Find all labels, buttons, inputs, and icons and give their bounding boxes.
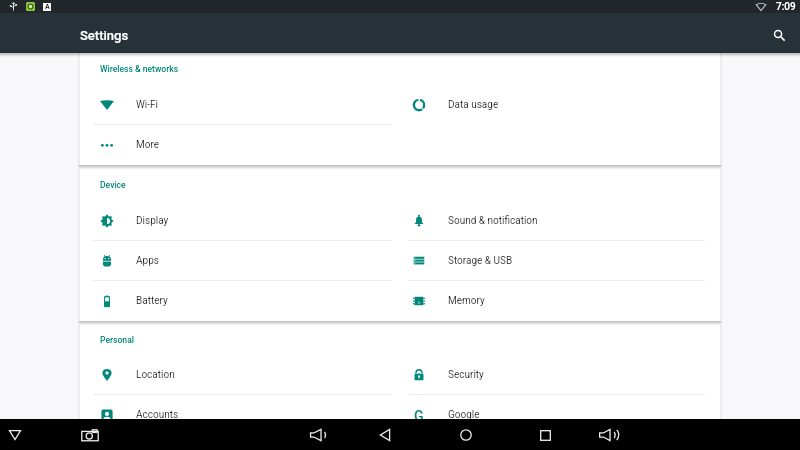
staticText: Data usage xyxy=(448,99,499,111)
staticText: Location xyxy=(136,369,175,381)
button[interactable]: Search xyxy=(764,20,794,50)
button[interactable]: Volume down xyxy=(305,421,333,449)
button[interactable]: Sound & notification xyxy=(400,201,720,241)
button[interactable]: Security xyxy=(400,355,720,395)
button[interactable]: Storage & USB xyxy=(400,241,720,281)
staticText: Storage & USB xyxy=(448,255,513,267)
staticText: Accounts xyxy=(136,409,179,421)
button[interactable]: G xyxy=(400,395,720,435)
button[interactable]: More xyxy=(80,125,400,165)
staticText: Personal xyxy=(100,335,134,345)
button[interactable]: Screenshot xyxy=(76,421,104,449)
button[interactable]: Location xyxy=(80,355,400,395)
staticText: A xyxy=(45,3,50,11)
button[interactable]: Battery xyxy=(80,281,400,321)
button[interactable]: Recents xyxy=(533,423,557,447)
staticText: 7:09 xyxy=(776,1,796,13)
button[interactable]: Accounts xyxy=(80,395,400,435)
button[interactable]: Volume up xyxy=(595,420,625,450)
button[interactable]: Data usage xyxy=(400,85,720,125)
button[interactable]: Memory xyxy=(400,281,720,321)
staticText: Security xyxy=(448,369,484,381)
staticText: More xyxy=(136,139,160,151)
button[interactable]: Apps xyxy=(80,241,400,281)
button[interactable]: Display xyxy=(80,201,400,241)
staticText: Battery xyxy=(136,295,168,307)
staticText: Device xyxy=(100,180,126,190)
staticText: Wireless & networks xyxy=(100,64,179,74)
button[interactable]: Home xyxy=(454,423,478,447)
button[interactable]: Back xyxy=(373,423,397,447)
staticText: Google xyxy=(448,409,480,421)
staticText: G xyxy=(414,408,424,422)
staticText: Settings xyxy=(80,28,129,43)
staticText: Sound & notification xyxy=(448,215,538,227)
button[interactable]: Collapse xyxy=(3,423,27,447)
staticText: Wi-Fi xyxy=(136,99,159,111)
staticText: Memory xyxy=(448,295,485,307)
button[interactable]: Wi-Fi xyxy=(80,85,400,125)
staticText: Apps xyxy=(136,255,159,267)
staticText: Display xyxy=(136,215,169,227)
